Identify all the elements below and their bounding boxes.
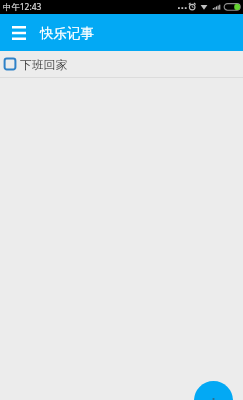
staticText: 中午12:43	[3, 1, 42, 12]
staticText: 快乐记事	[40, 25, 94, 42]
button[interactable]: Open navigation drawer	[0, 15, 36, 51]
button[interactable]: Add note	[194, 381, 233, 400]
button[interactable]: 下班回家	[0, 51, 243, 78]
staticText: 下班回家	[20, 58, 68, 73]
